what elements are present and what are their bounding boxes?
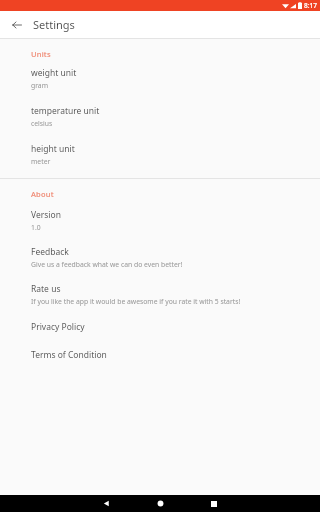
staticText: celsius — [31, 119, 53, 128]
button[interactable]: Privacy Policy — [0, 318, 320, 333]
staticText: weight unit — [31, 67, 77, 79]
staticText: About — [31, 189, 54, 199]
button[interactable]: Recent apps — [196, 495, 232, 512]
button[interactable]: Feedback — [0, 243, 320, 269]
button[interactable]: Terms of Condition — [0, 346, 320, 361]
button[interactable]: Back — [88, 495, 124, 512]
button[interactable]: Rate us — [0, 280, 320, 306]
button[interactable]: height unit — [0, 140, 320, 166]
staticText: If you like the app it would be awesome … — [31, 297, 241, 306]
button[interactable]: Back — [8, 16, 25, 33]
staticText: Terms of Condition — [31, 349, 107, 361]
staticText: Version — [31, 209, 61, 221]
button[interactable]: Version — [0, 206, 320, 232]
staticText: height unit — [31, 143, 75, 155]
staticText: Give us a feedback what we can do even b… — [31, 260, 183, 269]
staticText: Privacy Policy — [31, 321, 85, 333]
staticText: meter — [31, 157, 51, 166]
staticText: Settings — [33, 17, 75, 32]
staticText: 1.0 — [31, 223, 41, 232]
button[interactable]: Home — [142, 495, 178, 512]
staticText: 8:17 — [304, 1, 317, 10]
staticText: Feedback — [31, 246, 69, 258]
staticText: temperature unit — [31, 105, 100, 117]
staticText: Rate us — [31, 283, 61, 295]
staticText: gram — [31, 81, 49, 90]
button[interactable]: temperature unit — [0, 102, 320, 128]
button[interactable]: weight unit — [0, 64, 320, 90]
staticText: Units — [31, 49, 51, 59]
